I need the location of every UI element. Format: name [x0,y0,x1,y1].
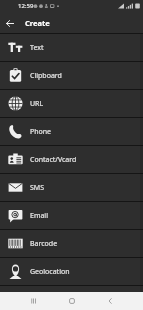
staticText: Email [30,211,48,221]
button[interactable]: Back [0,12,20,34]
button[interactable]: Clipboard [0,62,143,89]
staticText: Clipboard [30,71,62,81]
staticText: Text [30,43,44,53]
button[interactable]: SMS [0,174,143,201]
staticText: 12:59 [18,2,34,10]
button[interactable]: URL [0,90,143,117]
button[interactable]: Recents [0,292,67,310]
staticText: Create [25,18,50,28]
button[interactable]: Back [76,292,143,310]
button[interactable]: Contact/Vcard [0,146,143,173]
staticText: URL [30,99,44,109]
staticText: Contact/Vcard [30,155,77,165]
staticText: Barcode [30,239,58,249]
button[interactable]: Email [0,202,143,229]
staticText: SMS [30,183,45,193]
button[interactable]: Text [0,34,143,61]
button[interactable]: Home [67,292,76,310]
staticText: Geolocation [30,267,70,277]
staticText: Phone [30,127,52,137]
button[interactable]: Geolocation [0,258,143,285]
button[interactable]: Phone [0,118,143,145]
button[interactable]: Barcode [0,230,143,257]
